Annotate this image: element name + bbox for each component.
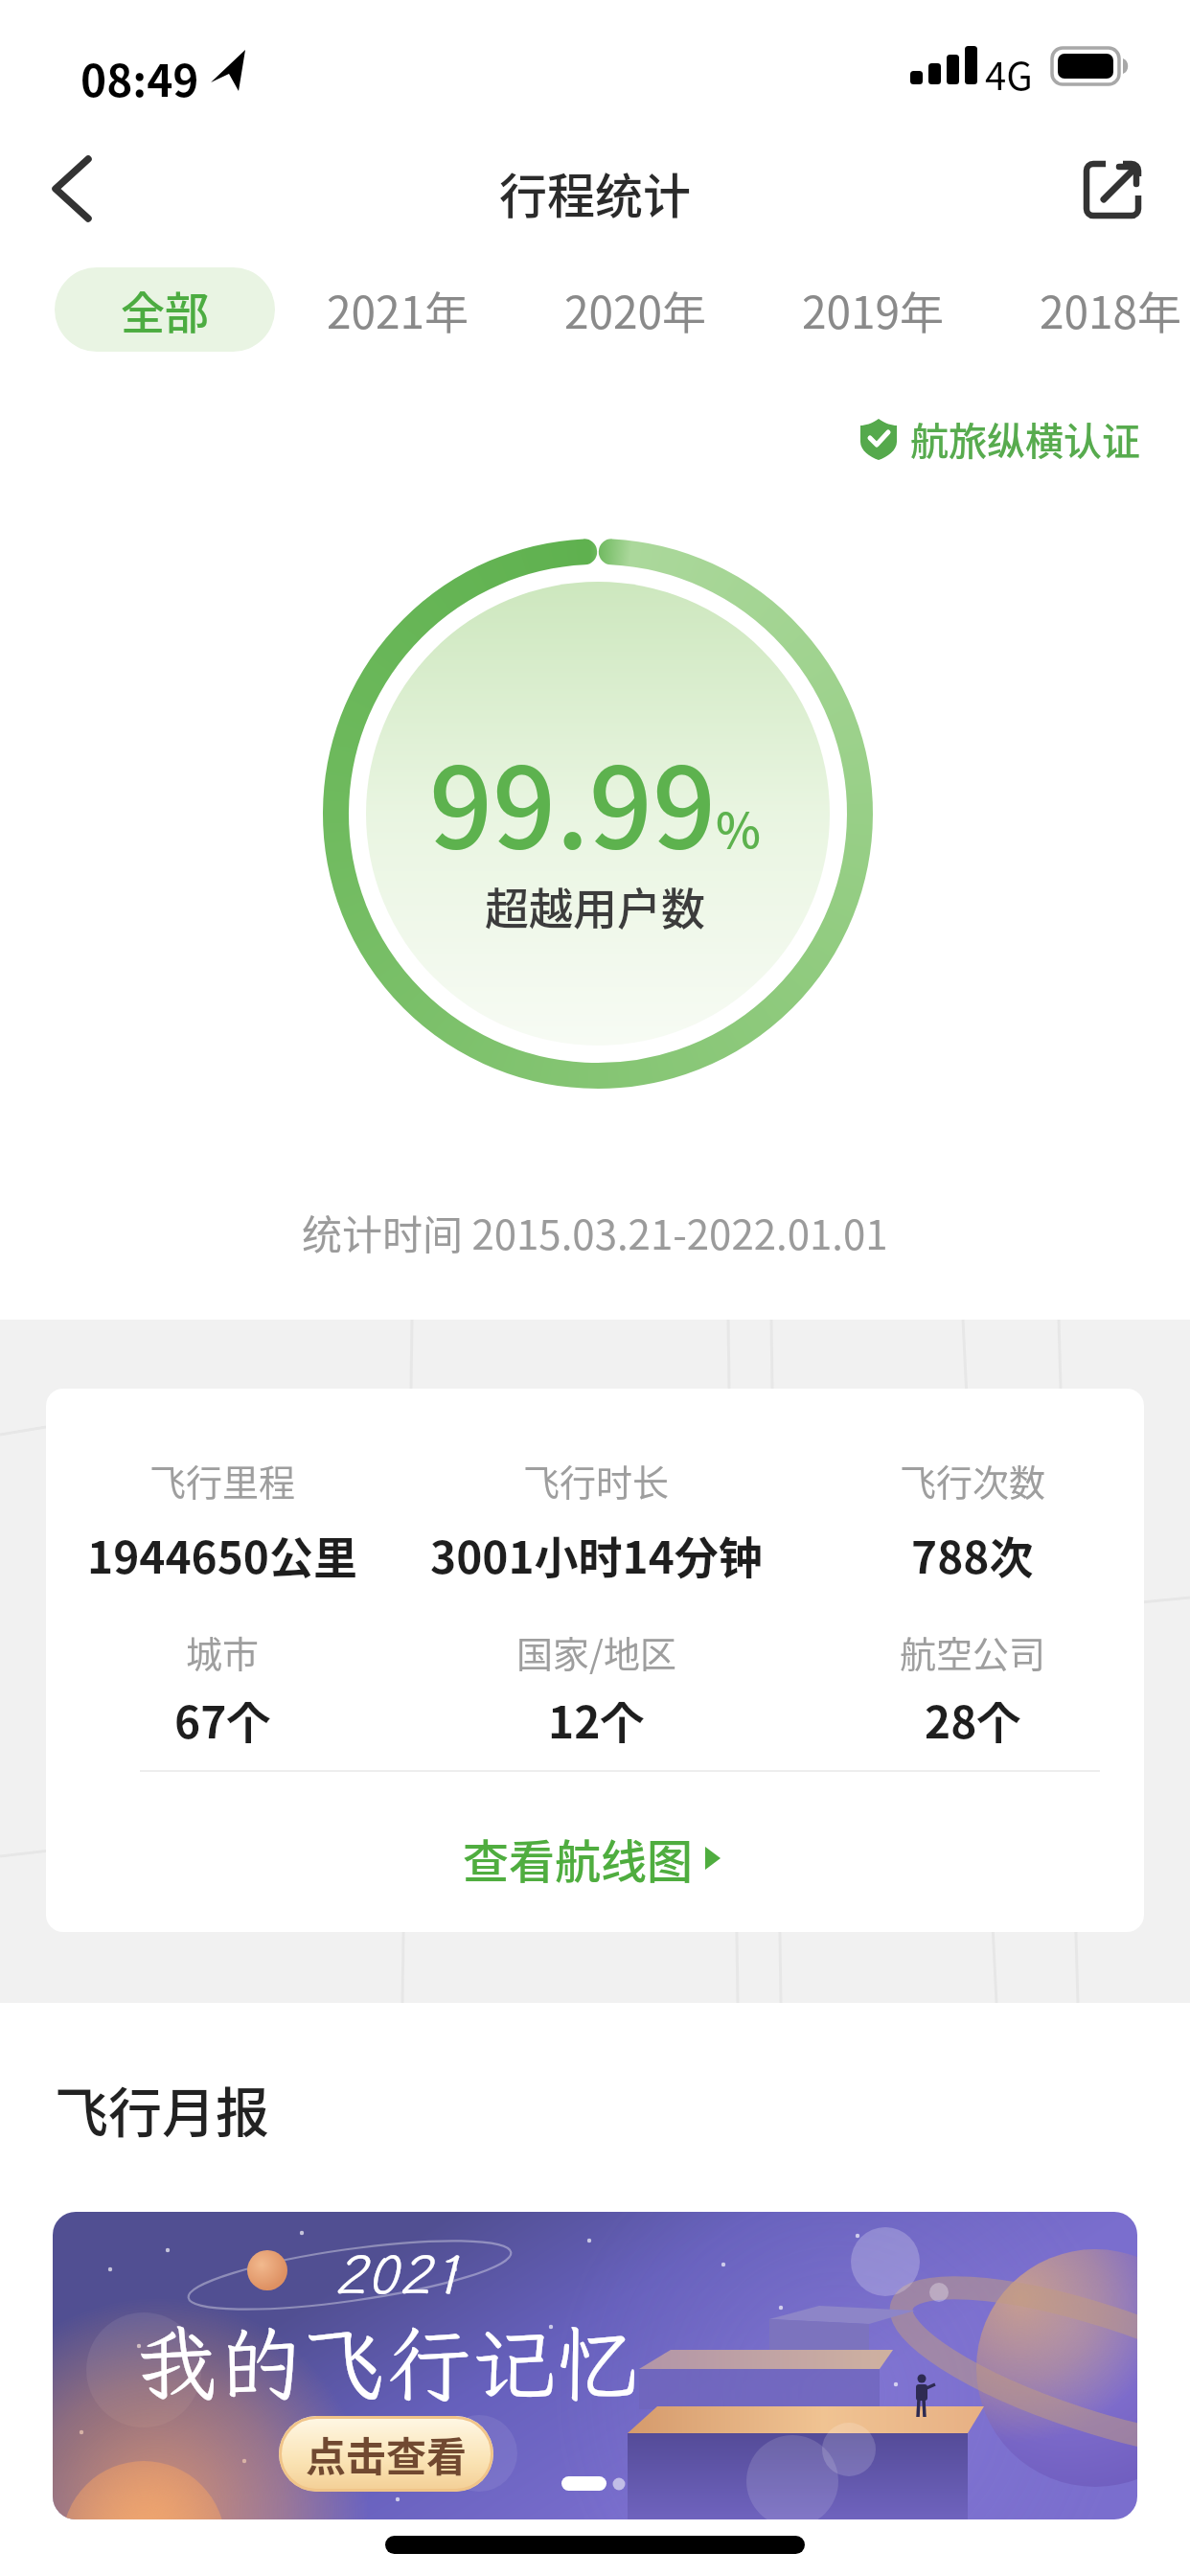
staticText: 2021 [334,2238,464,2309]
staticText: 67个 [174,1688,271,1751]
staticText: 飞行时长 [523,1454,670,1506]
staticText: 飞行月报 [55,2070,269,2148]
staticText: 统计时间 2015.03.21-2022.01.01 [302,1203,888,1260]
button[interactable]: 航旅纵横认证 [853,407,1150,469]
staticText: 城市 [186,1625,260,1677]
button[interactable]: 2021 [53,2212,1137,2519]
staticText: 我的飞行记忆 [135,2308,641,2415]
staticText: 2018年 [1040,278,1182,342]
button[interactable]: 点击查看 [279,2416,493,2492]
button[interactable]: 全部 [55,267,275,352]
staticText: 12个 [548,1688,645,1751]
staticText: 99.99% [429,719,761,872]
staticText: 点击查看 [306,2425,468,2483]
staticText: 全部 [121,278,209,342]
staticText: 超越用户数 [485,874,705,938]
staticText: 2020年 [564,278,707,342]
button[interactable] [29,144,125,240]
button[interactable]: 查看航线图 [46,1820,1144,1897]
button[interactable]: 2019年 [767,273,978,346]
staticText: 2019年 [802,278,945,342]
staticText: 航旅纵横认证 [910,411,1140,467]
button[interactable]: 2021年 [292,273,503,346]
button[interactable]: 2020年 [530,273,741,346]
staticText: 2021年 [327,278,469,342]
staticText: 08:49 [80,46,199,110]
staticText: 28个 [925,1688,1021,1751]
button[interactable] [1064,144,1159,240]
staticText: 国家/地区 [516,1625,676,1677]
staticText: 查看航线图 [463,1825,694,1892]
staticText: 788次 [911,1523,1034,1586]
button[interactable]: 2018年 [1005,273,1190,346]
staticText: 4G [985,46,1033,102]
staticText: 航空公司 [900,1625,1046,1677]
staticText: 飞行里程 [149,1454,296,1506]
staticText: 3001小时14分钟 [430,1523,763,1586]
staticText: 1944650公里 [87,1523,357,1586]
staticText: 行程统计 [499,158,691,221]
staticText: 飞行次数 [900,1454,1046,1506]
